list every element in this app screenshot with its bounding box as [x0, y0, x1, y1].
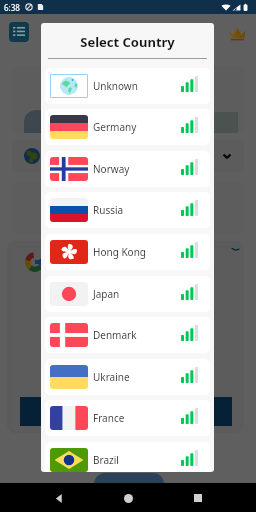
staticText: 6:38: [4, 2, 20, 13]
staticText: Unknown: [93, 79, 138, 93]
staticText: Japan: [93, 287, 120, 301]
staticText: Germany: [93, 120, 137, 134]
staticText: Select Country: [41, 33, 214, 51]
button[interactable]: Hong Kong: [45, 234, 210, 270]
staticText: Denmark: [93, 328, 137, 342]
button[interactable]: Germany: [45, 109, 210, 145]
button[interactable]: Russia: [45, 192, 210, 228]
button[interactable]: Japan: [45, 276, 210, 312]
button[interactable]: Home: [117, 487, 139, 509]
button[interactable]: [20, 397, 232, 426]
button[interactable]: Ukraine: [45, 359, 210, 395]
button[interactable]: Unknown: [45, 68, 210, 104]
staticText: Russia: [93, 203, 124, 217]
button[interactable]: Recents: [187, 487, 209, 509]
button[interactable]: Norway: [45, 151, 210, 187]
button[interactable]: Back: [48, 487, 70, 509]
staticText: Brazil: [93, 453, 119, 467]
button[interactable]: Brazil: [45, 442, 210, 472]
staticText: Hong Kong: [93, 245, 146, 259]
button[interactable]: France: [45, 400, 210, 436]
staticText: France: [93, 411, 125, 425]
staticText: Norway: [93, 162, 130, 176]
button[interactable]: Denmark: [45, 317, 210, 353]
button[interactable]: Server list: [9, 22, 29, 42]
button[interactable]: [12, 140, 244, 172]
button[interactable]: Premium: [228, 25, 246, 43]
staticText: Ukraine: [93, 370, 130, 384]
